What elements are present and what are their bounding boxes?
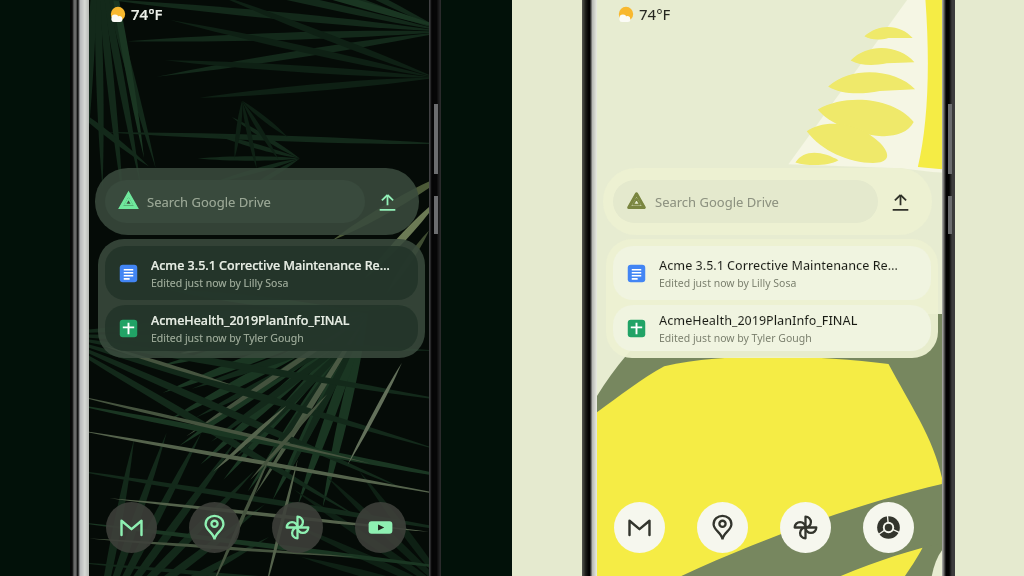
staticText: 74°F [131, 4, 163, 24]
staticText: AcmeHealth_2019PlanInfo_FINAL [659, 312, 858, 329]
staticText: Edited just now by Tyler Gough [659, 331, 812, 345]
button[interactable]: AcmeHealth_2019PlanInfo_FINAL [105, 305, 418, 351]
button[interactable]: AcmeHealth_2019PlanInfo_FINAL [613, 305, 931, 351]
button[interactable]: Acme 3.5.1 Corrective Maintenance Re… [613, 246, 931, 300]
staticText: Search Google Drive [655, 193, 779, 211]
button[interactable]: Photos [272, 502, 323, 553]
staticText: Edited just now by Lilly Sosa [151, 276, 289, 290]
button[interactable]: Maps [697, 502, 748, 553]
button[interactable]: Gmail [614, 502, 665, 553]
staticText: AcmeHealth_2019PlanInfo_FINAL [151, 312, 350, 329]
staticText: Edited just now by Lilly Sosa [659, 276, 797, 290]
button[interactable]: Upload [365, 180, 409, 224]
staticText: Edited just now by Tyler Gough [151, 331, 304, 345]
button[interactable]: Gmail [106, 502, 157, 553]
staticText: Acme 3.5.1 Corrective Maintenance Re… [659, 257, 898, 274]
button[interactable]: Chrome [863, 502, 914, 553]
button[interactable]: Search Google Drive [613, 180, 878, 223]
staticText: Acme 3.5.1 Corrective Maintenance Re… [151, 257, 390, 274]
button[interactable]: YouTube [355, 502, 406, 553]
staticText: 74°F [639, 4, 671, 24]
button[interactable]: Maps [189, 502, 240, 553]
button[interactable]: Upload [878, 180, 922, 224]
button[interactable]: Acme 3.5.1 Corrective Maintenance Re… [105, 246, 418, 300]
button[interactable]: Search Google Drive [105, 180, 365, 223]
button[interactable]: Photos [780, 502, 831, 553]
staticText: Search Google Drive [147, 193, 271, 211]
